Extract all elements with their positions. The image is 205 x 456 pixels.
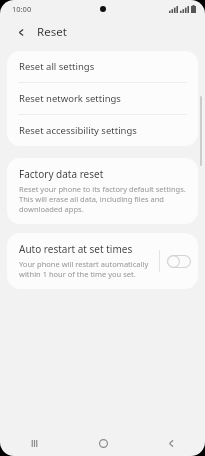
button[interactable]: Recent apps (0, 430, 69, 456)
button[interactable]: Back (11, 22, 31, 42)
staticText: Reset network settings (19, 92, 121, 105)
staticText: Reset (37, 24, 67, 40)
button[interactable]: Reset network settings (7, 83, 198, 114)
staticText: 10:00 (12, 4, 32, 14)
button[interactable]: Factory data reset (7, 158, 198, 224)
staticText: Reset all settings (19, 60, 95, 73)
button[interactable]: Auto restart at set times (7, 233, 198, 289)
button[interactable]: Reset all settings (7, 51, 198, 82)
button[interactable]: Auto restart toggle (160, 246, 198, 276)
button[interactable]: Reset accessibility settings (7, 115, 198, 146)
staticText: Auto restart at set times (19, 242, 133, 256)
button[interactable]: Home (69, 430, 137, 456)
staticText: Factory data reset (19, 167, 104, 181)
staticText: Reset accessibility settings (19, 124, 137, 137)
staticText: Reset your phone to its factory default … (19, 184, 186, 214)
button[interactable]: Back (137, 430, 205, 456)
staticText: Your phone will restart automatically wi… (19, 259, 159, 279)
